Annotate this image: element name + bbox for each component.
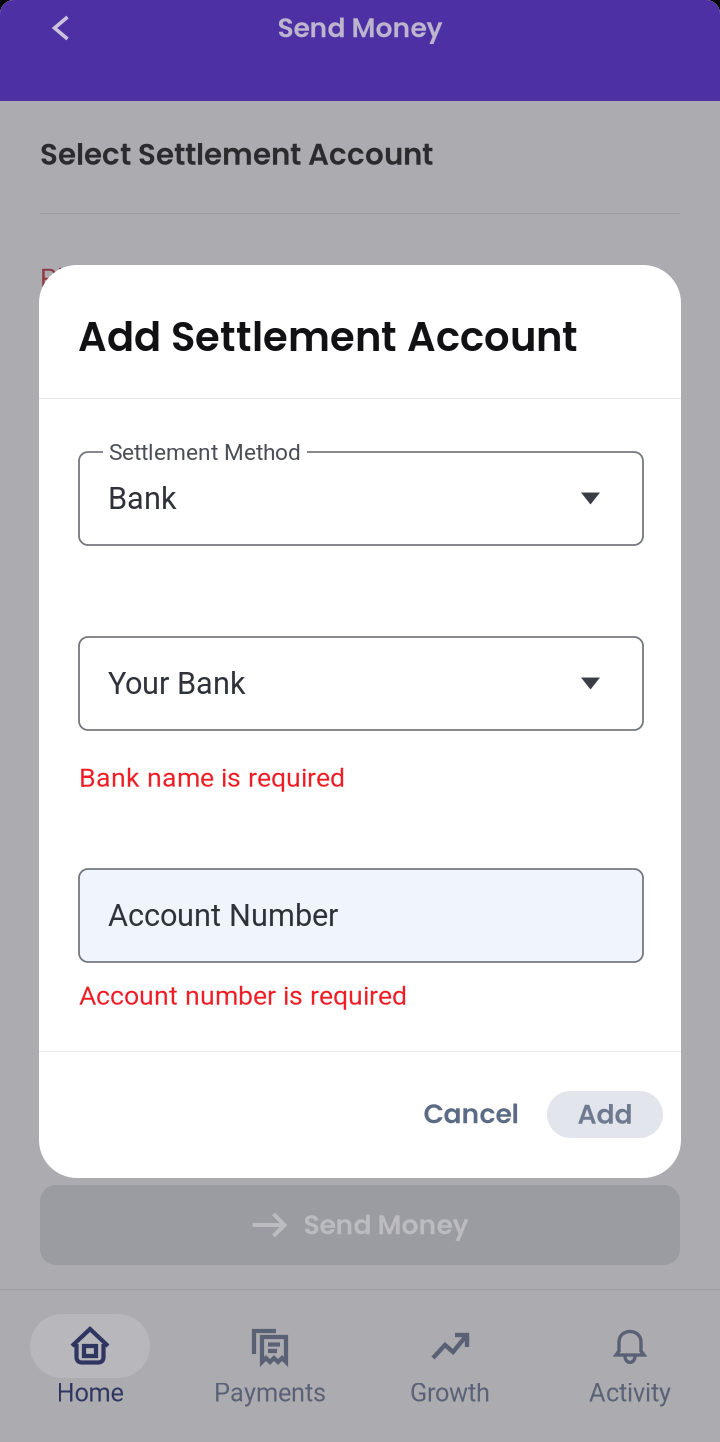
staticText: Cancel: [423, 1095, 518, 1133]
button[interactable]: Back: [29, 0, 93, 56]
staticText: Select Settlement Account: [40, 134, 433, 175]
staticText: Add: [577, 1096, 632, 1133]
staticText: Send Money: [277, 9, 442, 47]
staticText: Add Settlement Account: [78, 309, 578, 365]
button[interactable]: Activity: [540, 1290, 720, 1442]
staticText: Settlement Method: [109, 439, 301, 466]
button[interactable]: Add: [547, 1091, 663, 1138]
button[interactable]: Payments: [180, 1290, 360, 1442]
staticText: Your Bank: [108, 665, 246, 701]
staticText: Growth: [410, 1378, 490, 1408]
button[interactable]: Home: [0, 1290, 180, 1442]
staticText: Account Number: [108, 897, 338, 933]
button[interactable]: Growth: [360, 1290, 540, 1442]
staticText: Please add a settlement account: [40, 262, 432, 293]
button[interactable]: Send Money: [40, 1185, 680, 1265]
staticText: Home: [56, 1378, 123, 1408]
staticText: Bank: [108, 480, 177, 516]
staticText: Activity: [589, 1378, 671, 1408]
staticText: Payments: [214, 1378, 326, 1408]
staticText: Bank name is required: [79, 762, 345, 793]
button[interactable]: Cancel: [412, 1082, 530, 1146]
staticText: Send Money: [303, 1206, 468, 1244]
staticText: Account number is required: [79, 980, 407, 1011]
